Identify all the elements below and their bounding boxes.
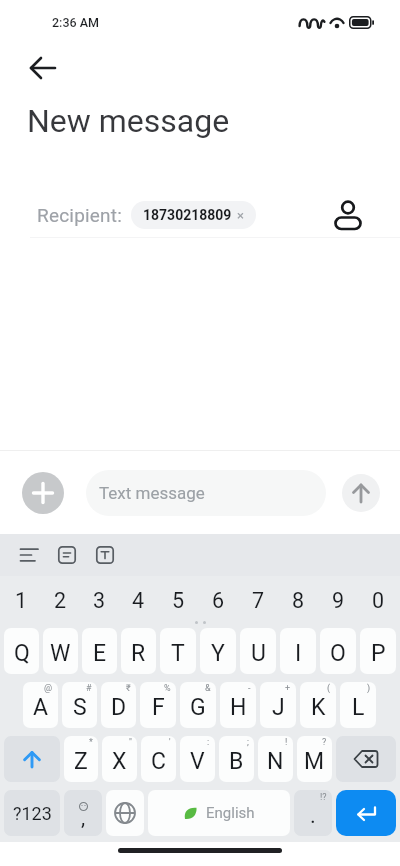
staticText: X xyxy=(112,748,127,775)
button[interactable]: Z xyxy=(64,736,98,782)
staticText: ! xyxy=(285,737,288,748)
staticText: U xyxy=(251,640,266,667)
button[interactable]: A xyxy=(23,682,58,728)
staticText: 18730218809 xyxy=(143,207,232,223)
staticText: !? xyxy=(320,792,327,803)
button[interactable] xyxy=(342,474,380,512)
staticText: T xyxy=(171,640,185,667)
button[interactable]: 8 xyxy=(278,576,318,620)
staticText: Y xyxy=(211,640,225,667)
staticText: M xyxy=(304,748,325,775)
staticText: J xyxy=(272,694,285,721)
button[interactable] xyxy=(106,790,144,836)
staticText: O xyxy=(330,640,346,667)
button[interactable] xyxy=(28,56,58,80)
staticText: B xyxy=(229,748,244,775)
button[interactable] xyxy=(22,472,64,514)
staticText: ; xyxy=(247,737,249,748)
button[interactable]: Q xyxy=(4,628,39,674)
button[interactable]: X xyxy=(102,736,137,782)
staticText: 2:36 AM xyxy=(52,15,100,30)
button[interactable]: R xyxy=(121,628,156,674)
button[interactable]: C xyxy=(141,736,176,782)
button[interactable]: P xyxy=(360,628,396,674)
button[interactable]: 3 xyxy=(80,576,119,620)
staticText: A xyxy=(33,694,49,721)
staticText: , xyxy=(81,806,86,831)
staticText: Z xyxy=(74,748,88,775)
staticText: % xyxy=(164,683,171,694)
staticText: - xyxy=(248,683,251,694)
button[interactable]: S xyxy=(62,682,97,728)
staticText: N xyxy=(267,748,284,775)
staticText: 4 xyxy=(132,588,145,613)
button[interactable]: , xyxy=(64,790,102,836)
button[interactable]: W xyxy=(43,628,78,674)
staticText: & xyxy=(205,683,211,694)
button[interactable]: N xyxy=(258,736,293,782)
button[interactable]: 6 xyxy=(198,576,238,620)
button[interactable]: L xyxy=(340,682,376,728)
staticText: * xyxy=(89,737,93,748)
button[interactable]: V xyxy=(180,736,215,782)
staticText: ?123 xyxy=(13,803,52,824)
staticText: New message xyxy=(27,102,230,140)
button[interactable]: Y xyxy=(200,628,236,674)
staticText: 8 xyxy=(292,588,305,613)
button[interactable] xyxy=(96,546,114,564)
button[interactable]: B xyxy=(219,736,254,782)
staticText: D xyxy=(111,694,127,721)
button[interactable]: 7 xyxy=(238,576,278,620)
button[interactable]: O xyxy=(320,628,356,674)
button[interactable]: 9 xyxy=(318,576,358,620)
staticText: 0 xyxy=(372,588,385,613)
staticText: ? xyxy=(322,737,327,748)
staticText: ' xyxy=(169,737,171,748)
button[interactable]: 0 xyxy=(358,576,398,620)
button[interactable] xyxy=(20,548,39,562)
staticText: Text message xyxy=(99,483,205,503)
button[interactable]: F xyxy=(140,682,176,728)
button[interactable]: 1 xyxy=(2,576,41,620)
staticText: 3 xyxy=(93,588,106,613)
staticText: R xyxy=(131,640,146,667)
button[interactable]: H xyxy=(220,682,256,728)
button[interactable]: 2 xyxy=(41,576,80,620)
button[interactable]: D xyxy=(101,682,136,728)
staticText: L xyxy=(352,694,365,721)
button[interactable]: J xyxy=(260,682,296,728)
button[interactable] xyxy=(336,736,396,782)
staticText: E xyxy=(93,640,107,667)
staticText: 7 xyxy=(252,588,265,613)
button[interactable] xyxy=(334,200,362,230)
staticText: W xyxy=(50,640,71,667)
button[interactable]: T xyxy=(160,628,196,674)
staticText: English xyxy=(206,804,255,822)
staticText: G xyxy=(190,694,206,721)
staticText: P xyxy=(371,640,386,667)
button[interactable]: U xyxy=(240,628,276,674)
button[interactable]: K xyxy=(300,682,336,728)
staticText: K xyxy=(311,694,326,721)
button[interactable]: G xyxy=(180,682,216,728)
button[interactable]: 18730218809 xyxy=(131,201,256,229)
button[interactable]: E xyxy=(82,628,117,674)
button[interactable] xyxy=(4,736,60,782)
button[interactable]: M xyxy=(297,736,332,782)
button[interactable]: Text message xyxy=(86,470,326,516)
staticText: Recipient: xyxy=(37,204,123,226)
staticText: 6 xyxy=(212,588,225,613)
button[interactable]: English xyxy=(148,790,290,836)
staticText: ) xyxy=(367,683,371,694)
button[interactable]: ?123 xyxy=(4,790,60,836)
staticText: V xyxy=(190,748,205,775)
button[interactable]: !? xyxy=(294,790,332,836)
button[interactable]: 4 xyxy=(119,576,158,620)
button[interactable] xyxy=(336,790,396,836)
button[interactable] xyxy=(58,546,76,564)
staticText: @ xyxy=(44,683,53,694)
staticText: S xyxy=(73,694,87,721)
button[interactable]: 5 xyxy=(158,576,198,620)
button[interactable]: I xyxy=(280,628,316,674)
staticText: × xyxy=(237,208,244,223)
